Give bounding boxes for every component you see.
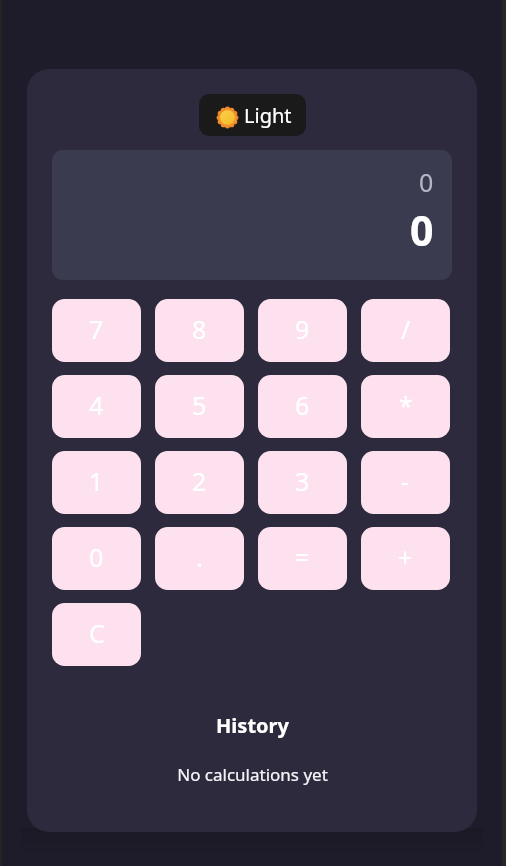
staticText: 0 <box>419 165 434 199</box>
staticText: = <box>295 540 310 574</box>
staticText: - <box>401 464 410 498</box>
staticText: 0 <box>89 540 104 574</box>
button[interactable]: 8 <box>155 299 244 362</box>
staticText: . <box>196 540 203 574</box>
button[interactable]: 2 <box>155 451 244 514</box>
button[interactable]: / <box>361 299 450 362</box>
staticText: 3 <box>295 464 310 498</box>
button[interactable]: * <box>361 375 450 438</box>
button[interactable]: 7 <box>52 299 141 362</box>
staticText: 0 <box>410 202 434 258</box>
button[interactable]: - <box>361 451 450 514</box>
staticText: 9 <box>295 312 310 346</box>
button[interactable]: C <box>52 603 141 666</box>
button[interactable]: 0 <box>52 527 141 590</box>
button[interactable]: . <box>155 527 244 590</box>
button[interactable]: 5 <box>155 375 244 438</box>
button[interactable]: + <box>361 527 450 590</box>
staticText: 5 <box>192 388 207 422</box>
staticText: 8 <box>192 312 207 346</box>
button[interactable]: 6 <box>258 375 347 438</box>
button[interactable]: 9 <box>258 299 347 362</box>
staticText: History <box>216 712 289 739</box>
staticText: C <box>89 616 105 650</box>
button[interactable]: 1 <box>52 451 141 514</box>
staticText: 6 <box>295 388 310 422</box>
button[interactable]: = <box>258 527 347 590</box>
staticText: Light <box>244 102 292 129</box>
button[interactable]: 3 <box>258 451 347 514</box>
staticText: No calculations yet <box>177 763 328 786</box>
button[interactable]: Light <box>199 94 306 136</box>
staticText: 2 <box>192 464 207 498</box>
button[interactable]: 4 <box>52 375 141 438</box>
staticText: 1 <box>89 464 104 498</box>
staticText: 4 <box>89 388 104 422</box>
staticText: 7 <box>89 312 104 346</box>
staticText: * <box>399 388 413 422</box>
staticText: + <box>398 540 413 574</box>
staticText: / <box>401 312 411 346</box>
